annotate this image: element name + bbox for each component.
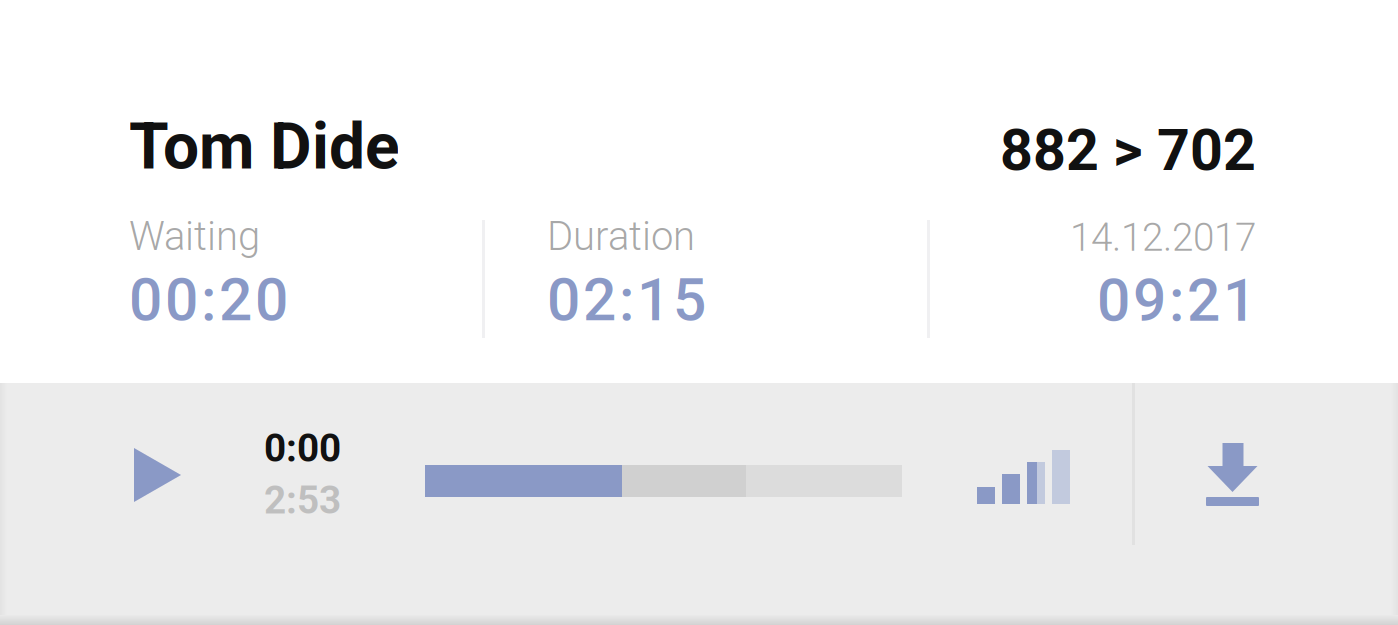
staticText: 14.12.2017 — [1070, 215, 1256, 260]
staticText: Waiting — [129, 213, 260, 260]
staticText: 00:20 — [129, 266, 288, 335]
staticText: 02:15 — [547, 266, 706, 335]
staticText: Tom Dide — [129, 109, 400, 184]
staticText: 09:21 — [1097, 266, 1256, 335]
staticText: 0:00 — [264, 426, 341, 471]
button[interactable]: Play — [0, 383, 223, 544]
staticText: 882 > 702 — [1000, 117, 1256, 184]
staticText: 2:53 — [264, 478, 341, 523]
staticText: Duration — [547, 213, 695, 260]
button[interactable]: Download — [0, 383, 1319, 554]
